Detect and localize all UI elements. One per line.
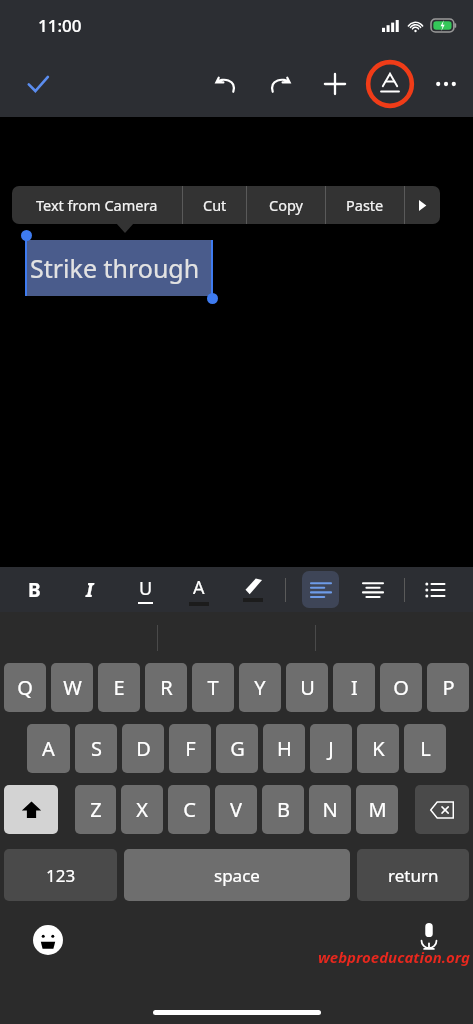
staticText: Y [254, 674, 266, 701]
staticText: J [328, 735, 334, 762]
button[interactable]: P [427, 663, 469, 712]
staticText: E [113, 674, 125, 701]
button[interactable]: Cut [183, 186, 246, 224]
staticText: Text from Camera [36, 195, 158, 215]
button[interactable]: Emoji [31, 923, 64, 956]
button[interactable]: Backspace [415, 785, 469, 834]
button[interactable]: Strike through [26, 240, 212, 296]
staticText: U [139, 576, 153, 601]
button[interactable]: Text formatting [366, 60, 414, 108]
staticText: Z [90, 796, 102, 823]
staticText: Paste [346, 195, 384, 215]
button[interactable]: return [357, 849, 469, 901]
staticText: T [207, 674, 219, 701]
staticText: S [91, 735, 102, 762]
button[interactable]: Copy [247, 186, 325, 224]
button[interactable]: space [124, 849, 350, 901]
button[interactable]: S [75, 724, 117, 773]
staticText: G [230, 735, 245, 762]
button[interactable]: A [27, 724, 70, 773]
staticText: return [388, 864, 439, 887]
button[interactable]: M [356, 785, 398, 834]
button[interactable]: Highlight [232, 569, 274, 611]
button[interactable]: Shift [4, 785, 58, 834]
button[interactable]: Y [239, 663, 281, 712]
button[interactable]: L [404, 724, 446, 773]
button[interactable]: B [262, 785, 304, 834]
button[interactable]: K [357, 724, 399, 773]
button[interactable]: I [333, 663, 375, 712]
staticText: K [372, 735, 385, 762]
staticText: V [230, 796, 242, 823]
button[interactable]: X [121, 785, 163, 834]
button[interactable]: D [122, 724, 164, 773]
staticText: webproeducation.org [318, 947, 470, 967]
staticText: M [368, 796, 387, 823]
button[interactable]: Paste [326, 186, 404, 224]
staticText: O [393, 674, 409, 701]
staticText: I [351, 674, 358, 701]
button[interactable]: Q [4, 663, 46, 712]
button[interactable]: H [263, 724, 305, 773]
button[interactable]: G [216, 724, 258, 773]
staticText: I [86, 577, 94, 603]
staticText: W [63, 674, 82, 701]
button[interactable]: Italic [69, 569, 111, 611]
staticText: Cut [203, 195, 227, 215]
staticText: A [193, 575, 205, 600]
button[interactable]: V [215, 785, 257, 834]
button[interactable]: Bulleted list [414, 569, 456, 611]
button[interactable]: Text color [178, 569, 220, 611]
button[interactable]: U [286, 663, 328, 712]
button[interactable]: Dictation [412, 919, 446, 953]
button[interactable]: Done [16, 62, 60, 106]
button[interactable]: Bold [13, 569, 55, 611]
button[interactable]: R [145, 663, 187, 712]
button[interactable]: Align center [352, 569, 394, 611]
button[interactable]: More [405, 186, 440, 224]
staticText: A [42, 735, 55, 762]
staticText: 11:00 [38, 14, 82, 37]
button[interactable]: F [169, 724, 211, 773]
staticText: Q [17, 674, 33, 701]
staticText: R [160, 674, 173, 701]
button[interactable]: N [309, 785, 351, 834]
button[interactable]: J [310, 724, 352, 773]
staticText: F [185, 735, 196, 762]
staticText: L [420, 735, 431, 762]
staticText: Strike through [30, 251, 200, 285]
staticText: B [277, 796, 290, 823]
button[interactable]: Insert [311, 60, 359, 108]
staticText: space [214, 864, 260, 887]
button[interactable]: 123 [4, 849, 117, 901]
button[interactable]: Undo [202, 60, 250, 108]
button[interactable]: E [98, 663, 140, 712]
button[interactable]: Z [75, 785, 116, 834]
staticText: P [442, 674, 455, 701]
button[interactable]: Underline [124, 569, 166, 611]
button[interactable]: W [51, 663, 93, 712]
staticText: N [322, 796, 338, 823]
button[interactable]: Redo [256, 60, 304, 108]
staticText: U [300, 674, 315, 701]
staticText: H [277, 735, 292, 762]
button[interactable]: Align left [302, 571, 339, 608]
staticText: C [183, 796, 196, 823]
button[interactable]: C [168, 785, 210, 834]
staticText: Copy [269, 195, 303, 215]
staticText: B [28, 577, 41, 603]
button[interactable]: O [380, 663, 422, 712]
staticText: X [136, 796, 148, 823]
button[interactable]: Text from Camera [12, 186, 182, 224]
staticText: D [136, 735, 151, 762]
button[interactable]: T [192, 663, 234, 712]
staticText: 123 [46, 864, 76, 887]
button[interactable]: More options [422, 60, 470, 108]
